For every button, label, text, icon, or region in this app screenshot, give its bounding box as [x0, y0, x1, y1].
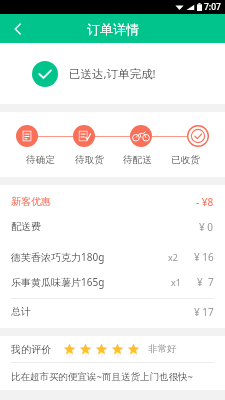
staticText: 已送达,订单完成! — [69, 66, 156, 82]
staticText: 德芙香浓巧克力180g — [11, 250, 105, 264]
staticText: 订单详情 — [87, 21, 139, 37]
staticText: x2 — [168, 251, 178, 263]
staticText: 待取货 — [75, 154, 104, 166]
staticText: 7:07 — [204, 1, 221, 13]
staticText: 待配送 — [123, 154, 152, 166]
staticText: 比在超市买的便宜诶~而且送货上门也很快~ — [11, 370, 193, 383]
staticText: ¥ 0 — [199, 220, 214, 234]
staticText: ¥ 17 — [194, 305, 214, 319]
staticText: ¥ 16 — [194, 250, 214, 264]
staticText: 已收货 — [171, 154, 200, 166]
staticText: 我的评价 — [11, 343, 51, 356]
staticText: x1 — [171, 276, 181, 288]
staticText: - ¥8 — [196, 195, 214, 209]
button[interactable]: 我的评价 — [11, 336, 214, 362]
staticText: 待确定 — [26, 154, 55, 166]
staticText: 新客优惠 — [11, 195, 51, 208]
button[interactable]: Back — [0, 14, 36, 43]
staticText: ¥ 7 — [197, 275, 214, 289]
staticText: 配送费 — [11, 220, 41, 233]
staticText: 乐事黄瓜味薯片165g — [11, 275, 105, 289]
staticText: 非常好 — [148, 343, 177, 355]
staticText: 总计 — [11, 305, 31, 318]
